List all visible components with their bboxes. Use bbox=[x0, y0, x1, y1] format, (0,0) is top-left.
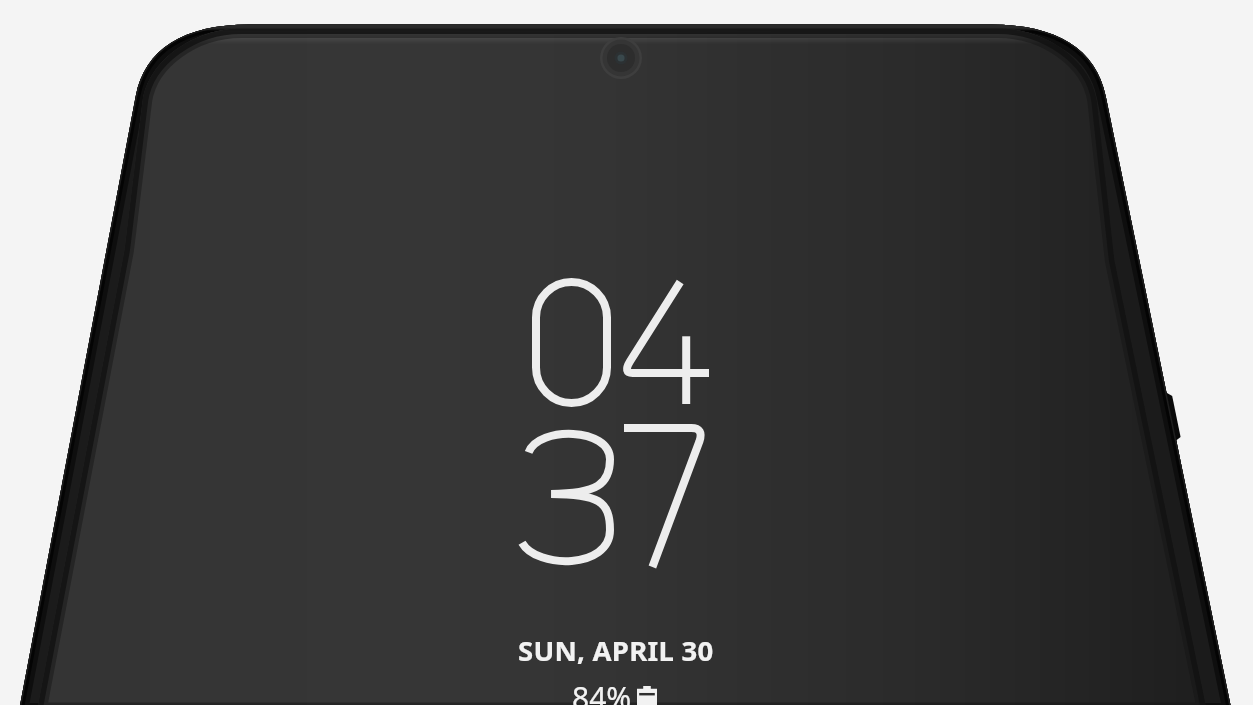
staticText: 84% bbox=[572, 677, 632, 705]
button[interactable]: SUN, APRIL 30 bbox=[518, 632, 714, 669]
button[interactable]: Clock 04:37 bbox=[514, 275, 714, 575]
other: Front camera bbox=[600, 37, 642, 79]
